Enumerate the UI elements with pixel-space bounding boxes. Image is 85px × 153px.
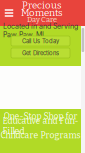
staticText: Precious [22, 0, 62, 11]
button[interactable]: Get Directions [11, 48, 70, 58]
staticText: Childcare Programs [0, 130, 80, 140]
staticText: Get Directions [22, 49, 59, 57]
staticText: One-Stop Shop for [3, 111, 77, 122]
staticText: Call Us Today [22, 37, 59, 45]
staticText: Moments [21, 7, 63, 18]
staticText: Day Care [27, 15, 57, 24]
button[interactable]: Menu [2, 5, 16, 21]
button[interactable]: Call Us Today [11, 36, 70, 46]
staticText: Educative and Fun-Filled [2, 116, 78, 136]
staticText: Located in and Serving Paw Paw, MI [3, 22, 78, 39]
